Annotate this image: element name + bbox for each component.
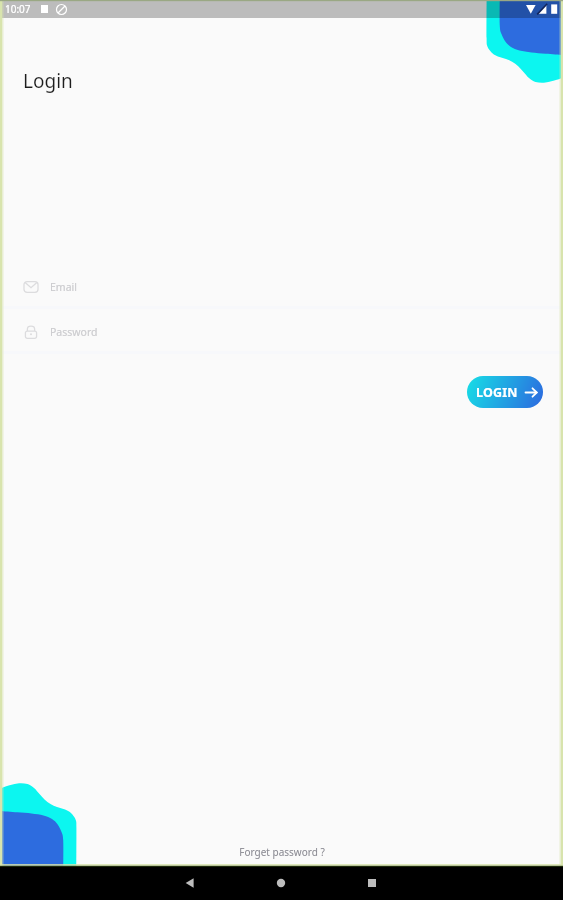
button[interactable]: Password — [0, 315, 563, 354]
staticText: Password — [50, 325, 98, 339]
staticText: 10:07 — [5, 2, 31, 16]
button[interactable]: Home — [272, 874, 290, 892]
button[interactable]: Email — [0, 270, 563, 309]
button[interactable]: Recent apps — [363, 874, 381, 892]
button[interactable]: Back — [181, 874, 199, 892]
staticText: LOGIN — [476, 384, 518, 401]
staticText: Email — [50, 280, 77, 294]
button[interactable]: LOGIN — [467, 376, 543, 408]
button[interactable]: Forget password ? — [0, 832, 563, 866]
staticText: Forget password ? — [239, 845, 325, 859]
staticText: Login — [23, 68, 73, 94]
